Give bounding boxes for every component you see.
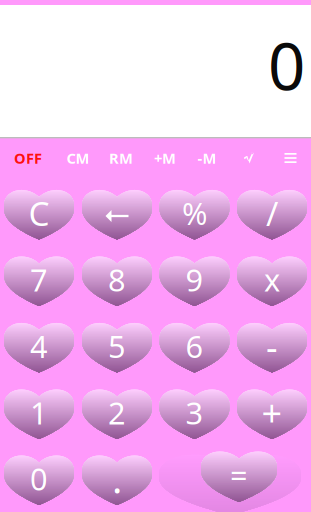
button[interactable]: C: [4, 188, 74, 239]
staticText: =: [230, 455, 248, 495]
button[interactable]: 7: [4, 255, 74, 306]
button[interactable]: RM: [100, 146, 142, 170]
staticText: 1: [30, 392, 48, 433]
staticText: -M: [197, 148, 216, 168]
staticText: x: [264, 259, 280, 300]
staticText: 0: [268, 22, 305, 108]
button[interactable]: 5: [82, 321, 152, 372]
staticText: +M: [154, 148, 176, 168]
staticText: .: [112, 453, 122, 504]
button[interactable]: +M: [142, 146, 188, 170]
staticText: 8: [108, 259, 126, 300]
staticText: -: [266, 322, 278, 370]
staticText: %: [182, 193, 207, 233]
button[interactable]: -: [237, 321, 307, 372]
staticText: C: [28, 191, 49, 235]
staticText: 3: [185, 392, 203, 433]
button[interactable]: x: [237, 255, 307, 306]
button[interactable]: 0: [4, 454, 74, 505]
button[interactable]: /: [237, 188, 307, 239]
staticText: 7: [30, 259, 48, 300]
staticText: /: [266, 191, 278, 235]
button[interactable]: -M: [188, 146, 226, 170]
button[interactable]: 1: [4, 388, 74, 439]
staticText: +: [261, 389, 282, 436]
button[interactable]: .: [82, 454, 152, 505]
button[interactable]: 9: [159, 255, 229, 306]
staticText: CM: [66, 148, 89, 168]
button[interactable]: Menu: [272, 146, 309, 170]
staticText: 9: [185, 259, 203, 300]
button[interactable]: %: [159, 188, 229, 239]
button[interactable]: +: [237, 388, 307, 439]
button[interactable]: 4: [4, 321, 74, 372]
button[interactable]: OFF: [0, 146, 56, 170]
button[interactable]: 6: [159, 321, 229, 372]
staticText: 4: [30, 326, 48, 366]
button[interactable]: Equals: [159, 453, 301, 512]
staticText: 5: [108, 326, 126, 366]
button[interactable]: Backspace: [82, 188, 152, 239]
staticText: OFF: [14, 148, 42, 168]
staticText: 6: [185, 326, 203, 366]
button[interactable]: =: [201, 450, 277, 502]
button[interactable]: 3: [159, 388, 229, 439]
button[interactable]: Square root: [226, 146, 272, 170]
button[interactable]: CM: [56, 146, 100, 170]
staticText: 2: [108, 392, 126, 433]
staticText: RM: [109, 148, 133, 168]
staticText: 0: [30, 458, 48, 499]
button[interactable]: 8: [82, 255, 152, 306]
button[interactable]: 2: [82, 388, 152, 439]
